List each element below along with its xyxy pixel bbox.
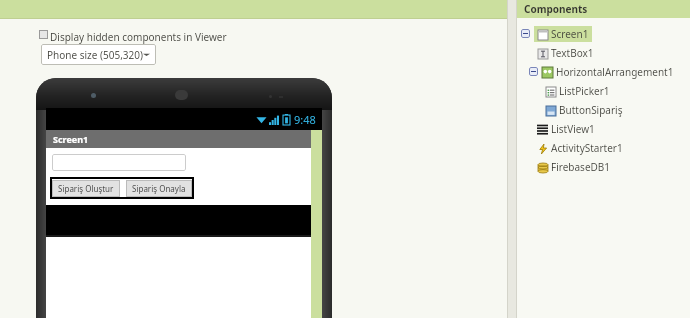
button[interactable]: ActivityStarter1 bbox=[517, 138, 690, 157]
button[interactable]: Screen1 bbox=[517, 24, 690, 43]
staticText: Sipariş Oluştur bbox=[58, 183, 114, 194]
button[interactable]: HorizontalArrangement1 bbox=[517, 62, 690, 81]
button[interactable]: Phone size (505,320) bbox=[41, 44, 156, 65]
staticText: Screen1 bbox=[551, 27, 589, 41]
button[interactable]: Sipariş Onayla bbox=[126, 180, 192, 197]
staticText: 9:48 bbox=[294, 112, 316, 127]
button[interactable] bbox=[46, 205, 322, 235]
staticText: ActivityStarter1 bbox=[551, 141, 623, 155]
button[interactable]: Sipariş Oluştur bbox=[52, 180, 120, 197]
button[interactable] bbox=[52, 154, 186, 171]
staticText: TextBox1 bbox=[551, 46, 594, 60]
staticText: FirebaseDB1 bbox=[551, 160, 611, 174]
button[interactable]: Display hidden components in Viewer bbox=[38, 29, 228, 45]
button[interactable]: ListPicker1 bbox=[517, 81, 690, 100]
button[interactable]: ListView1 bbox=[517, 119, 690, 138]
staticText: ButtonSipariş bbox=[559, 103, 623, 117]
button[interactable]: FirebaseDB1 bbox=[517, 157, 690, 176]
staticText: Display hidden components in Viewer bbox=[50, 30, 227, 44]
staticText: ListPicker1 bbox=[559, 84, 610, 98]
staticText: Sipariş Onayla bbox=[132, 183, 186, 194]
staticText: ListView1 bbox=[551, 122, 595, 136]
staticText: Components bbox=[524, 2, 588, 16]
button[interactable]: ButtonSipariş bbox=[517, 100, 690, 119]
button[interactable]: TextBox1 bbox=[517, 43, 690, 62]
staticText: HorizontalArrangement1 bbox=[556, 65, 674, 79]
staticText: Screen1 bbox=[53, 133, 89, 145]
staticText: Phone size (505,320) bbox=[47, 48, 143, 62]
